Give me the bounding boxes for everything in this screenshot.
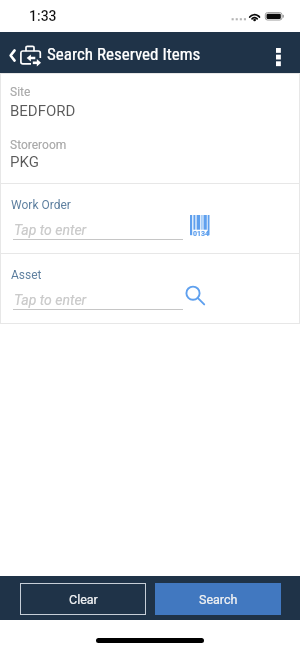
- button[interactable]: Scan barcode: [178, 206, 212, 240]
- staticText: BEDFORD: [10, 102, 76, 120]
- staticText: 1:33: [29, 8, 57, 24]
- button[interactable]: Back: [4, 32, 46, 73]
- button[interactable]: More options: [266, 32, 300, 73]
- staticText: PKG: [10, 153, 39, 171]
- button[interactable]: Search asset: [178, 276, 212, 310]
- staticText: Storeroom: [10, 138, 67, 152]
- button[interactable]: Work Order: [0, 184, 300, 254]
- staticText: Asset: [11, 268, 42, 282]
- staticText: Search Reserved Items: [47, 44, 201, 64]
- staticText: Tap to enter: [14, 222, 87, 238]
- button[interactable]: Clear: [20, 583, 146, 615]
- button[interactable]: Asset: [0, 254, 300, 324]
- staticText: Work Order: [11, 198, 71, 212]
- staticText: Clear: [69, 592, 98, 607]
- staticText: Tap to enter: [14, 292, 87, 308]
- staticText: Search: [199, 592, 238, 607]
- button[interactable]: Search: [155, 583, 281, 615]
- staticText: Site: [10, 85, 31, 99]
- staticText: 0134: [193, 230, 210, 238]
